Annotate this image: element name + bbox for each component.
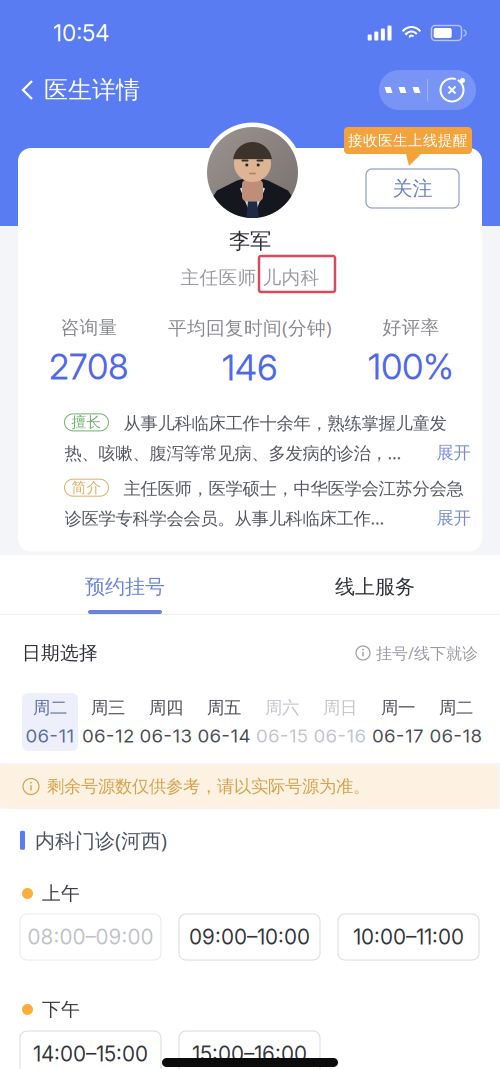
- staticText: 06-11: [25, 724, 74, 747]
- staticText: 线上服务: [335, 574, 415, 599]
- staticText: 周二: [439, 697, 473, 718]
- button[interactable]: 09:00–10:00: [179, 914, 320, 960]
- button[interactable]: 更多与关闭: [379, 70, 476, 110]
- staticText: 上午: [42, 882, 80, 905]
- button[interactable]: 周四: [138, 693, 194, 751]
- button[interactable]: 线上服务: [250, 555, 500, 614]
- button[interactable]: 关注: [366, 169, 459, 208]
- staticText: 挂号/线下就诊: [376, 642, 478, 664]
- staticText: 展开: [436, 442, 470, 463]
- staticText: 剩余号源数仅供参考，请以实际号源为准。: [47, 776, 370, 797]
- staticText: 周六: [265, 697, 299, 718]
- staticText: 10:54: [53, 19, 110, 47]
- staticText: 06-13: [139, 724, 192, 747]
- staticText: 日期选择: [22, 641, 98, 664]
- staticText: 周五: [207, 697, 241, 718]
- staticText: 09:00–10:00: [189, 924, 310, 949]
- staticText: 2708: [49, 346, 129, 388]
- button[interactable]: 返回 医生详情: [0, 69, 140, 111]
- staticText: 06-18: [429, 724, 482, 747]
- staticText: 06-15: [256, 724, 308, 747]
- staticText: 咨询量: [60, 316, 117, 339]
- staticText: 146: [222, 347, 278, 389]
- button[interactable]: 08:00–09:00: [20, 914, 161, 960]
- button[interactable]: 周一: [370, 693, 426, 751]
- staticText: 热、咳嗽、腹泻等常见病、多发病的诊治，…: [64, 441, 401, 464]
- button[interactable]: 周日: [312, 693, 368, 751]
- staticText: 06-12: [82, 724, 134, 747]
- staticText: 简介: [71, 479, 101, 497]
- staticText: 06-16: [313, 724, 366, 747]
- staticText: 周四: [149, 697, 183, 718]
- staticText: 关注: [392, 176, 432, 201]
- staticText: 主任医师 儿内科: [180, 266, 319, 289]
- button[interactable]: 周二: [22, 693, 78, 751]
- button[interactable]: 15:00–16:00: [179, 1031, 320, 1069]
- staticText: 10:00–11:00: [353, 924, 464, 949]
- button[interactable]: 周三: [80, 693, 136, 751]
- staticText: 下午: [42, 998, 80, 1021]
- staticText: 周一: [381, 697, 415, 718]
- staticText: 好评率: [382, 316, 439, 339]
- staticText: 医生详情: [44, 75, 140, 105]
- staticText: 08:00–09:00: [27, 924, 153, 949]
- staticText: 接收医生上线提醒: [348, 131, 468, 149]
- staticText: 展开: [436, 507, 470, 529]
- button[interactable]: 挂号/线下就诊: [356, 642, 478, 664]
- staticText: 14:00–15:00: [33, 1041, 148, 1066]
- button[interactable]: 展开: [436, 442, 470, 463]
- staticText: 内科门诊(河西): [35, 827, 167, 854]
- staticText: 06-17: [372, 724, 424, 747]
- staticText: 平均回复时间(分钟): [168, 315, 332, 340]
- staticText: 06-14: [197, 724, 250, 747]
- staticText: 周日: [323, 697, 357, 718]
- button[interactable]: 周五: [196, 693, 252, 751]
- staticText: 周二: [33, 697, 67, 718]
- staticText: 15:00–16:00: [192, 1041, 307, 1066]
- button[interactable]: 预约挂号: [0, 555, 250, 614]
- staticText: 诊医学专科学会会员。从事儿科临床工作…: [64, 506, 384, 529]
- button[interactable]: 周二: [428, 693, 484, 751]
- staticText: 周三: [91, 697, 125, 718]
- staticText: 李军: [229, 228, 271, 254]
- button[interactable]: 10:00–11:00: [338, 914, 479, 960]
- staticText: 擅长: [71, 413, 101, 431]
- staticText: 从事儿科临床工作十余年，熟练掌握儿童发: [123, 413, 446, 434]
- button[interactable]: 14:00–15:00: [20, 1031, 161, 1069]
- staticText: 100%: [368, 346, 454, 388]
- button[interactable]: 展开: [436, 507, 470, 529]
- staticText: 预约挂号: [85, 574, 165, 599]
- button[interactable]: 周六: [254, 693, 310, 751]
- staticText: 主任医师，医学硕士，中华医学会江苏分会急: [123, 478, 463, 499]
